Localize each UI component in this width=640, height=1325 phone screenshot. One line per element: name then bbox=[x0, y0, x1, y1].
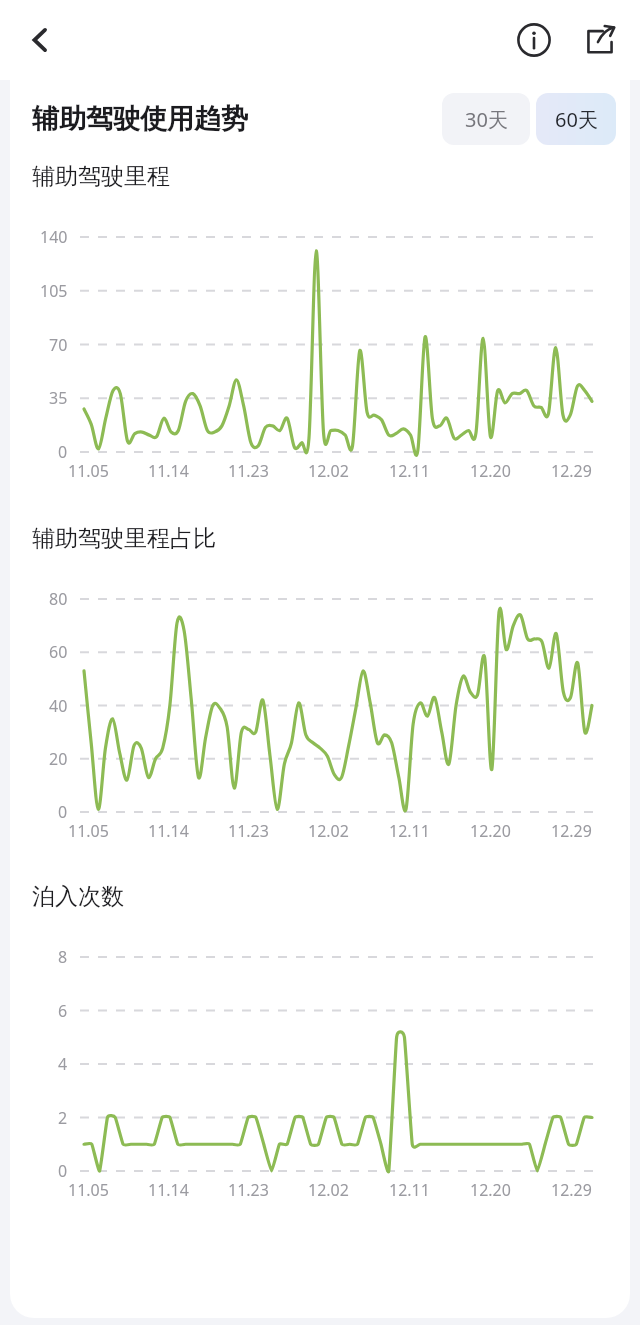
button[interactable]: Share bbox=[572, 12, 628, 68]
staticText: 11.14 bbox=[148, 1179, 189, 1201]
button[interactable]: Back bbox=[12, 12, 68, 68]
staticText: 11.05 bbox=[68, 460, 109, 482]
staticText: 70 bbox=[49, 334, 68, 356]
button[interactable]: 30天 bbox=[442, 93, 530, 145]
staticText: 12.02 bbox=[308, 820, 349, 842]
staticText: 0 bbox=[58, 801, 68, 823]
staticText: 0 bbox=[58, 1160, 68, 1182]
staticText: 80 bbox=[49, 588, 68, 610]
staticText: 12.29 bbox=[551, 1179, 592, 1201]
staticText: 11.14 bbox=[148, 460, 189, 482]
staticText: 12.29 bbox=[551, 820, 592, 842]
staticText: 60天 bbox=[555, 106, 598, 133]
staticText: 12.20 bbox=[470, 460, 511, 482]
staticText: 11.05 bbox=[68, 1179, 109, 1201]
staticText: 6 bbox=[58, 1000, 68, 1022]
staticText: 11.23 bbox=[228, 1179, 269, 1201]
staticText: 12.02 bbox=[308, 460, 349, 482]
button[interactable]: Info bbox=[506, 12, 562, 68]
staticText: 辅助驾驶里程 bbox=[32, 162, 170, 191]
staticText: 140 bbox=[40, 226, 68, 248]
staticText: 12.02 bbox=[308, 1179, 349, 1201]
button[interactable]: 60天 bbox=[536, 93, 616, 145]
staticText: 0 bbox=[58, 441, 68, 463]
staticText: 105 bbox=[40, 280, 68, 302]
staticText: 12.11 bbox=[389, 1179, 430, 1201]
staticText: 40 bbox=[49, 695, 68, 717]
staticText: 8 bbox=[58, 946, 68, 968]
staticText: 30天 bbox=[465, 106, 508, 133]
staticText: 辅助驾驶使用趋势 bbox=[32, 102, 248, 136]
staticText: 11.23 bbox=[228, 820, 269, 842]
staticText: 12.11 bbox=[389, 460, 430, 482]
staticText: 泊入次数 bbox=[32, 882, 124, 911]
staticText: 12.29 bbox=[551, 460, 592, 482]
staticText: 35 bbox=[49, 387, 68, 409]
staticText: 11.05 bbox=[68, 820, 109, 842]
staticText: 60 bbox=[49, 641, 68, 663]
staticText: 20 bbox=[49, 748, 68, 770]
staticText: 11.14 bbox=[148, 820, 189, 842]
staticText: 12.20 bbox=[470, 1179, 511, 1201]
staticText: 辅助驾驶里程占比 bbox=[32, 524, 216, 553]
staticText: 11.23 bbox=[228, 460, 269, 482]
staticText: 12.11 bbox=[389, 820, 430, 842]
staticText: 2 bbox=[58, 1107, 68, 1129]
staticText: 12.20 bbox=[470, 820, 511, 842]
staticText: 4 bbox=[58, 1053, 68, 1075]
